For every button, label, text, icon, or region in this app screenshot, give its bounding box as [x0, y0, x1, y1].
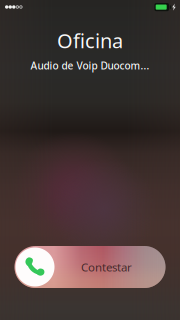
button[interactable]: Contestar	[14, 246, 165, 288]
staticText: Oficina	[57, 27, 123, 54]
staticText: Contestar	[81, 259, 132, 275]
staticText: Audio de Voip Duocom...	[30, 59, 149, 73]
